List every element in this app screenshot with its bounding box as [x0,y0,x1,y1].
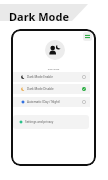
staticText: Dark Mode Disable [27,87,54,91]
staticText: Settings and privacy [25,120,54,124]
button[interactable]: Dark Mode Enable [12,72,90,82]
button[interactable]: Dark Mode Disable [12,84,90,94]
button[interactable]: Menu [83,32,92,41]
button[interactable]: Settings and privacy [13,115,89,129]
staticText: Automatic (Day / Night) [27,100,60,104]
staticText: Dark Mode Enable [27,75,53,79]
button[interactable]: Automatic (Day / Night) [12,97,90,107]
staticText: Dark Mode [11,68,96,71]
staticText: Dark Mode [9,9,70,24]
